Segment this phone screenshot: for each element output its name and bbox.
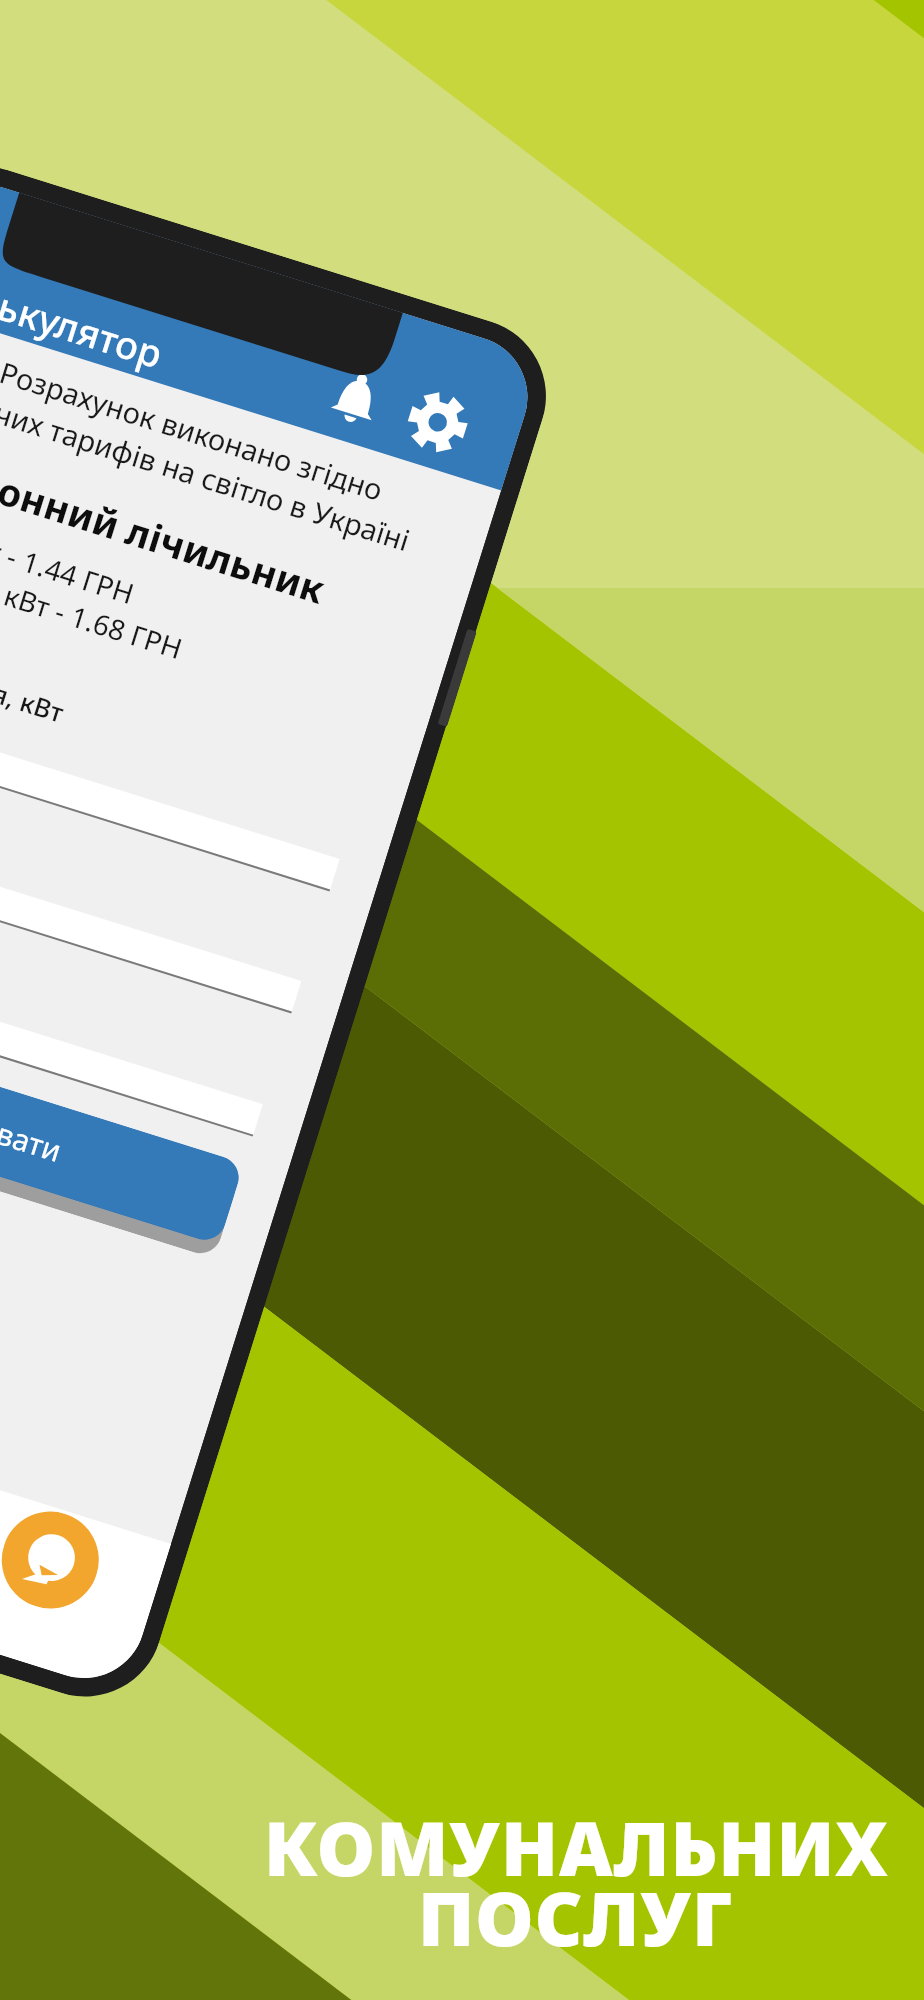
button[interactable]: Notifications: [317, 361, 395, 439]
staticText: КОМУНАЛЬНИХ: [264, 1797, 889, 1898]
staticText: Калькулятор: [0, 258, 169, 379]
staticText: Однозонний лічильник: [0, 427, 332, 615]
staticText: Спожита електроенергія, кВт: [0, 614, 69, 730]
staticText: ПОСЛУГ: [418, 1867, 734, 1968]
staticText: Розрахувати: [0, 1078, 67, 1171]
button[interactable]: Розрахувати: [0, 1002, 244, 1245]
button[interactable]: Chat: [0, 1499, 111, 1621]
button[interactable]: Settings: [400, 385, 475, 460]
staticText: Розрахунок виконано згідно діючих тарифі…: [0, 325, 475, 575]
staticText: до 100 кВт - 1.44 ГРН більше 100 кВт - 1…: [0, 492, 199, 667]
